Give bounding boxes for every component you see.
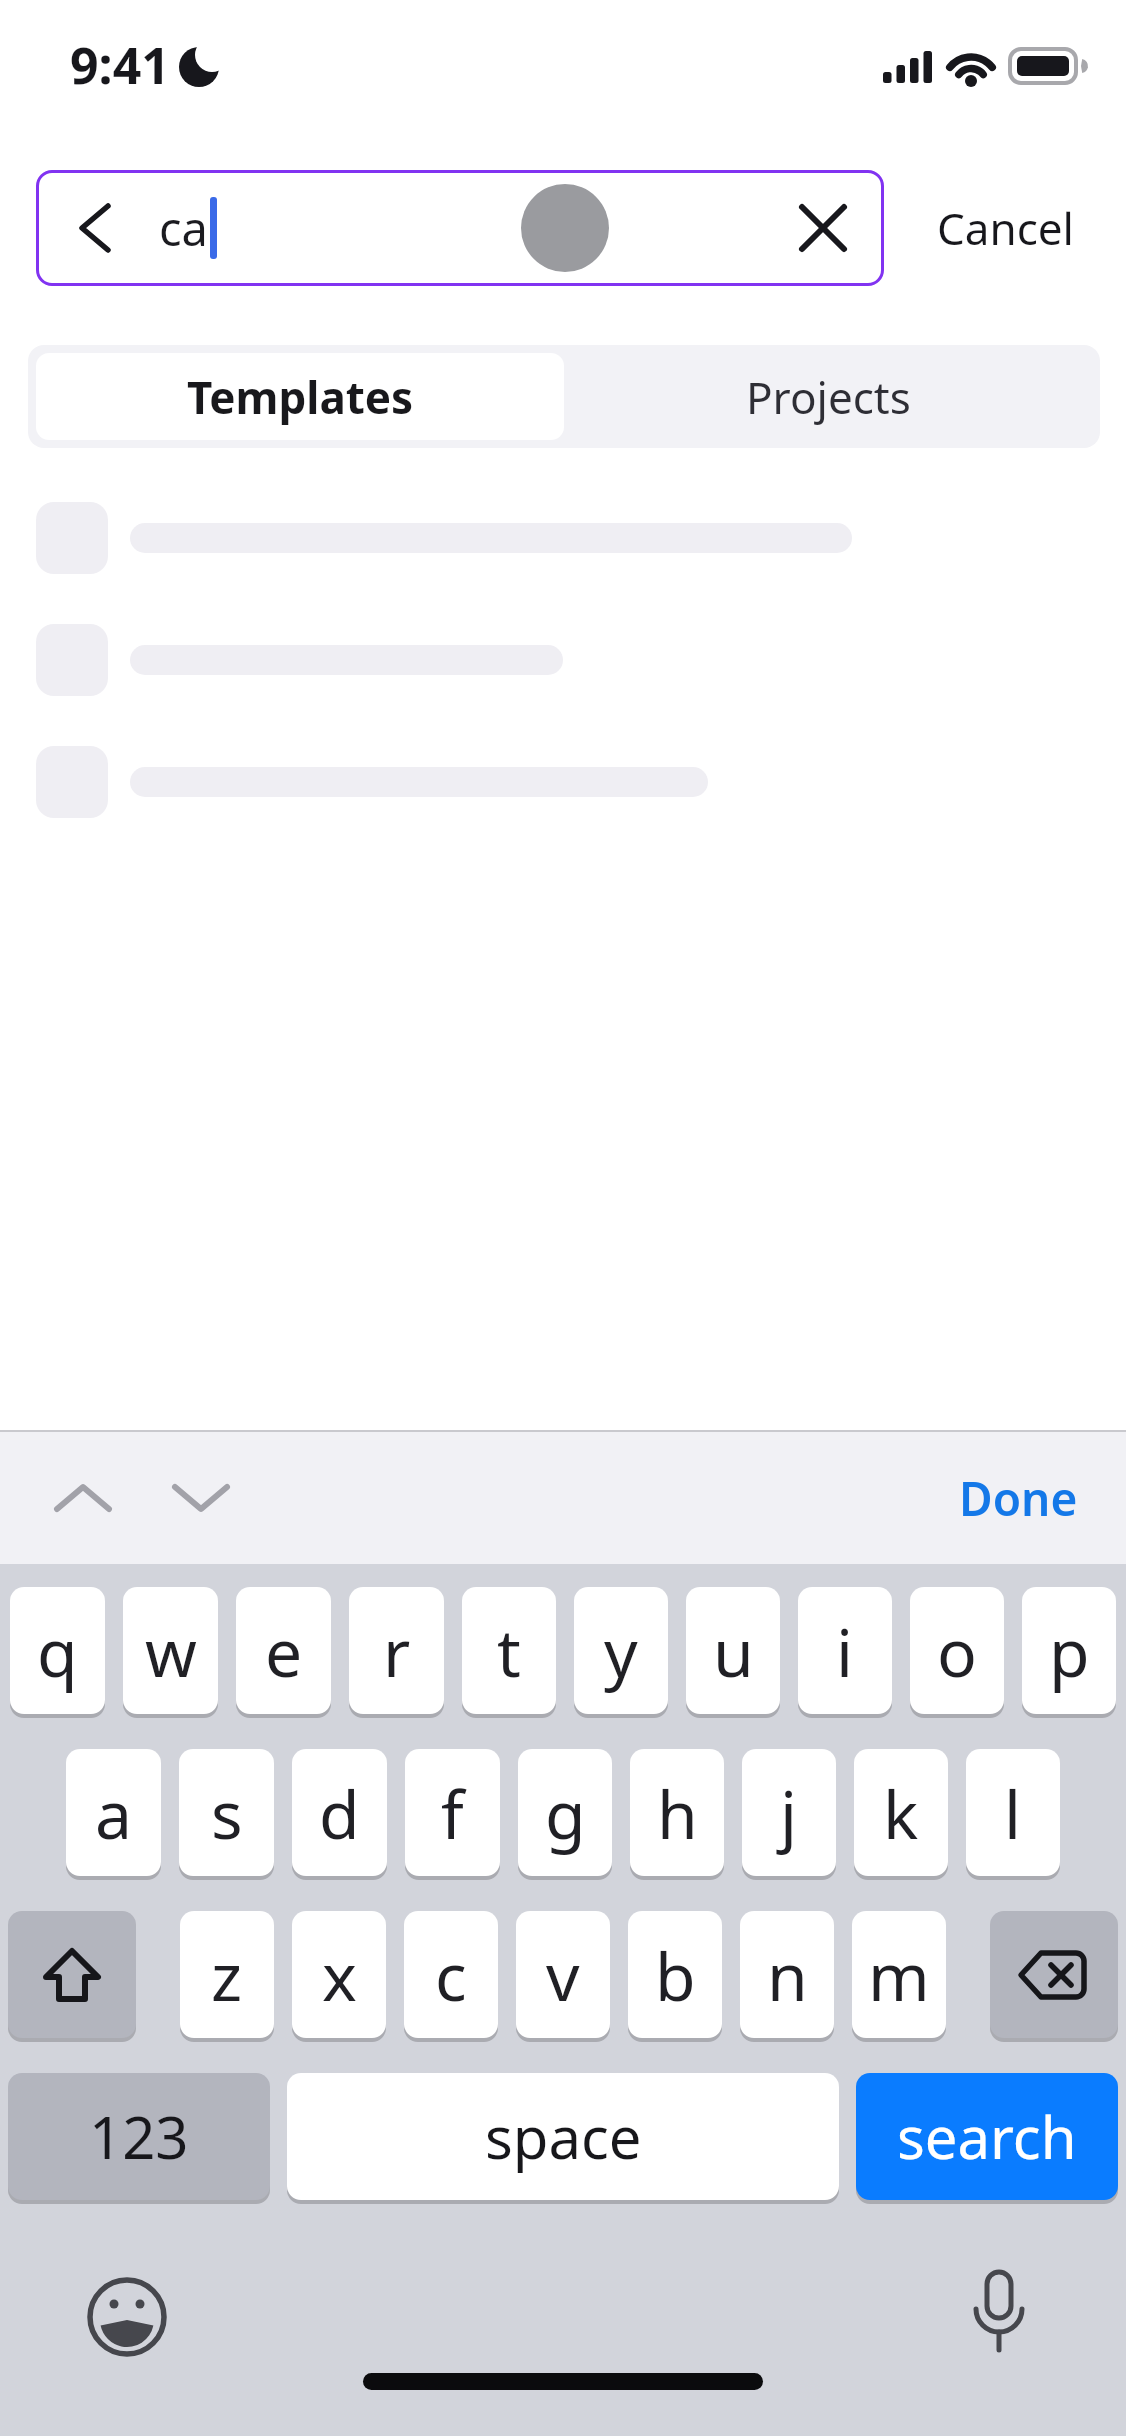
button[interactable]: l: [966, 1749, 1060, 1876]
staticText: Projects: [746, 367, 911, 427]
staticText: u: [713, 1606, 754, 1696]
staticText: space: [485, 2097, 642, 2176]
button[interactable]: c: [404, 1911, 498, 2038]
button[interactable]: u: [686, 1587, 780, 1714]
button[interactable]: p: [1022, 1587, 1116, 1714]
staticText: n: [767, 1930, 808, 2020]
staticText: c: [435, 1930, 467, 2020]
staticText: b: [655, 1930, 696, 2020]
button[interactable]: r: [349, 1587, 444, 1714]
button[interactable]: t: [462, 1587, 556, 1714]
staticText: m: [868, 1930, 930, 2020]
button[interactable]: e: [236, 1587, 331, 1714]
button[interactable]: [990, 1911, 1118, 2038]
button[interactable]: ca: [36, 170, 884, 286]
button[interactable]: m: [852, 1911, 946, 2038]
staticText: i: [836, 1606, 854, 1696]
staticText: a: [95, 1768, 133, 1858]
staticText: q: [37, 1606, 78, 1696]
button[interactable]: o: [910, 1587, 1004, 1714]
button[interactable]: [8, 1911, 136, 2038]
staticText: search: [897, 2097, 1077, 2176]
staticText: Done: [959, 1467, 1078, 1530]
button[interactable]: y: [574, 1587, 668, 1714]
button[interactable]: g: [518, 1749, 612, 1876]
button[interactable]: x: [292, 1911, 386, 2038]
button[interactable]: z: [180, 1911, 274, 2038]
staticText: x: [322, 1930, 357, 2020]
staticText: d: [319, 1768, 360, 1858]
button[interactable]: search: [856, 2073, 1118, 2200]
staticText: 123: [89, 2097, 189, 2176]
staticText: Templates: [187, 367, 414, 427]
button[interactable]: a: [66, 1749, 161, 1876]
button[interactable]: v: [516, 1911, 610, 2038]
staticText: Cancel: [937, 198, 1074, 258]
button[interactable]: n: [740, 1911, 834, 2038]
button[interactable]: [971, 2270, 1027, 2362]
button[interactable]: q: [10, 1587, 105, 1714]
staticText: w: [145, 1606, 197, 1696]
staticText: z: [211, 1930, 243, 2020]
button[interactable]: Cancel: [884, 198, 1126, 258]
button[interactable]: d: [292, 1749, 387, 1876]
staticText: v: [546, 1930, 580, 2020]
staticText: f: [441, 1768, 464, 1858]
staticText: p: [1049, 1606, 1090, 1696]
button[interactable]: j: [742, 1749, 836, 1876]
button[interactable]: [54, 1469, 112, 1527]
staticText: g: [545, 1768, 586, 1858]
button[interactable]: w: [123, 1587, 218, 1714]
button[interactable]: Done: [959, 1467, 1078, 1530]
staticText: 9:41: [70, 31, 170, 99]
button[interactable]: b: [628, 1911, 722, 2038]
staticText: o: [937, 1606, 977, 1696]
staticText: l: [1004, 1768, 1022, 1858]
button[interactable]: [86, 2276, 168, 2358]
staticText: r: [383, 1606, 411, 1696]
staticText: h: [657, 1768, 698, 1858]
staticText: y: [604, 1606, 638, 1696]
button[interactable]: i: [798, 1587, 892, 1714]
button[interactable]: Templates: [36, 353, 564, 440]
button[interactable]: f: [405, 1749, 500, 1876]
staticText: s: [211, 1768, 243, 1858]
button[interactable]: h: [630, 1749, 724, 1876]
button[interactable]: k: [854, 1749, 948, 1876]
staticText: t: [497, 1606, 521, 1696]
button[interactable]: s: [179, 1749, 274, 1876]
button[interactable]: [800, 205, 846, 251]
button[interactable]: space: [287, 2073, 839, 2200]
button[interactable]: Projects: [564, 353, 1092, 440]
staticText: ca: [159, 196, 208, 260]
button[interactable]: [172, 1469, 230, 1527]
staticText: j: [780, 1768, 798, 1858]
staticText: k: [883, 1768, 919, 1858]
button[interactable]: 123: [8, 2073, 270, 2200]
staticText: e: [265, 1606, 303, 1696]
